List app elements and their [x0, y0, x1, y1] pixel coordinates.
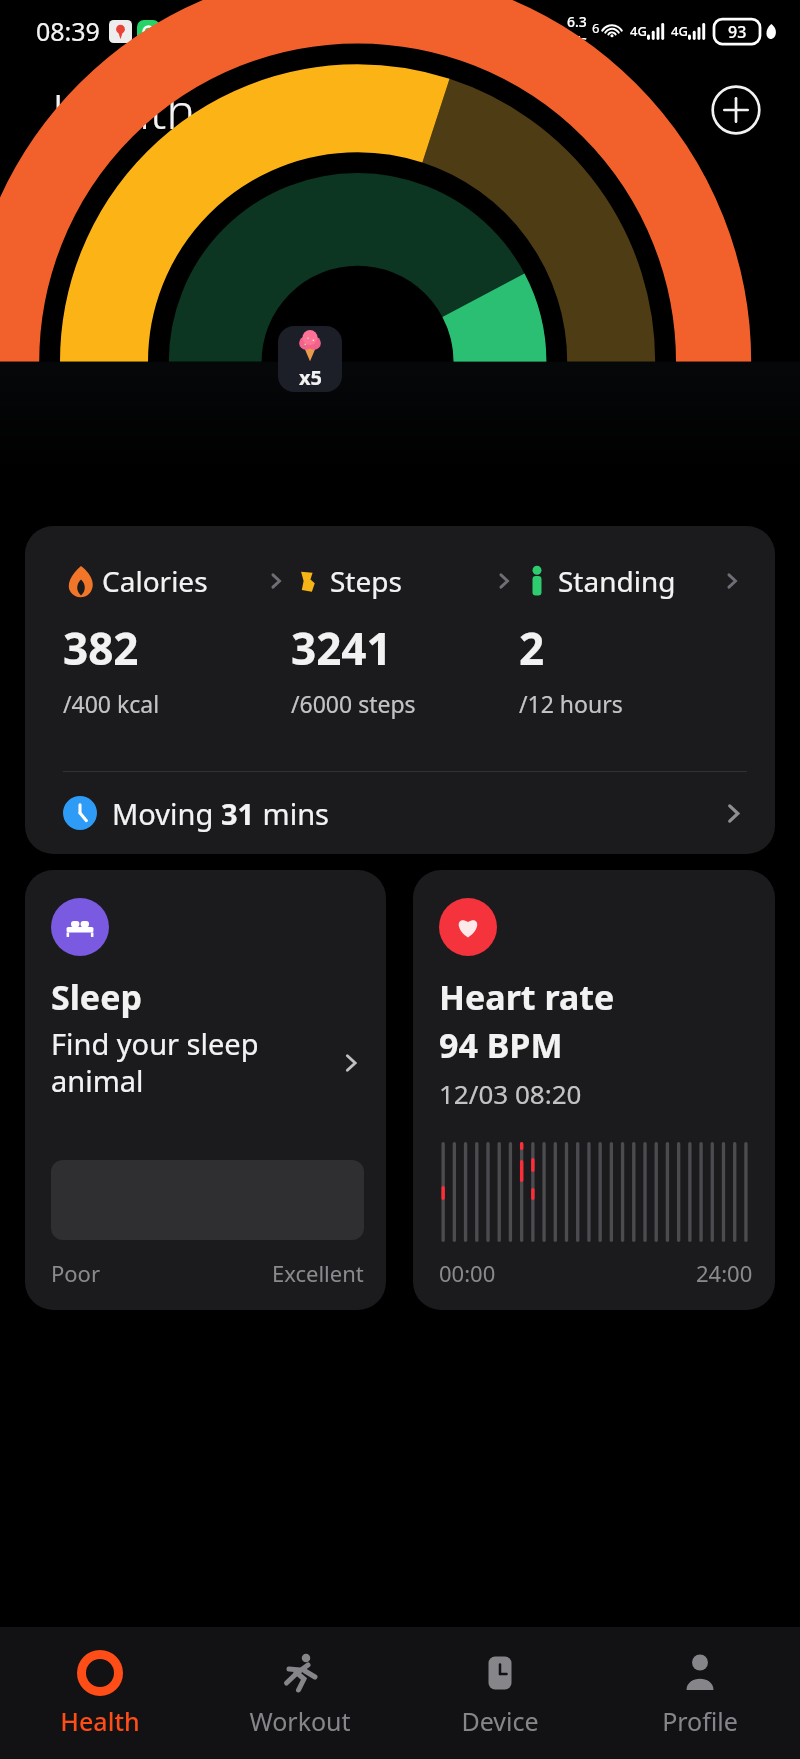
staticText: Health	[52, 78, 195, 143]
staticText: 94 BPM	[439, 1022, 563, 1068]
button[interactable]: Workout	[200, 1627, 400, 1759]
staticText: Excellent	[272, 1258, 364, 1288]
staticText: Device	[461, 1704, 539, 1738]
staticText: Calories	[102, 562, 208, 600]
staticText: 6	[592, 19, 600, 37]
staticText: 93	[728, 21, 747, 43]
staticText: Steps	[330, 562, 402, 600]
staticText: Moving	[112, 794, 221, 833]
staticText: 6.3	[567, 12, 587, 31]
staticText: 31	[221, 794, 255, 833]
staticText: /6000 steps	[291, 688, 416, 719]
staticText: Standing	[558, 562, 676, 600]
staticText: 4G	[671, 22, 688, 40]
staticText: x5	[299, 364, 322, 391]
staticText: Poor	[51, 1258, 101, 1288]
staticText: 12/03 08:20	[439, 1076, 582, 1111]
button[interactable]: Steps	[291, 562, 519, 600]
staticText: Sleep	[51, 974, 142, 1020]
staticText: 4G	[630, 22, 647, 40]
button[interactable]: Moving	[63, 772, 747, 854]
staticText: Heart rate	[439, 974, 615, 1020]
staticText: Health	[60, 1704, 140, 1738]
staticText: mins	[255, 794, 329, 833]
button[interactable]: Profile	[600, 1627, 800, 1759]
button[interactable]: Sleep	[25, 870, 386, 1310]
button[interactable]: x5	[278, 326, 342, 392]
staticText: 382	[63, 618, 139, 678]
button[interactable]: Calories	[63, 562, 291, 600]
staticText: Find your sleep animal	[51, 1024, 338, 1101]
button[interactable]: Calories	[25, 526, 775, 854]
staticText: 3241	[291, 618, 392, 678]
button[interactable]: Device	[400, 1627, 600, 1759]
staticText: 00:00	[439, 1258, 496, 1288]
staticText: Profile	[662, 1704, 738, 1738]
staticText: 08:39	[36, 14, 100, 48]
button[interactable]: Heart rate	[413, 870, 775, 1310]
staticText: /400 kcal	[63, 688, 160, 719]
button[interactable]: Standing	[519, 562, 747, 600]
staticText: Workout	[249, 1704, 351, 1738]
button[interactable]: Add	[710, 84, 762, 136]
staticText: 24:00	[696, 1258, 753, 1288]
button[interactable]: Health	[0, 1627, 200, 1759]
staticText: /12 hours	[519, 688, 623, 719]
staticText: K/s	[566, 31, 588, 50]
staticText: 2	[519, 618, 545, 678]
